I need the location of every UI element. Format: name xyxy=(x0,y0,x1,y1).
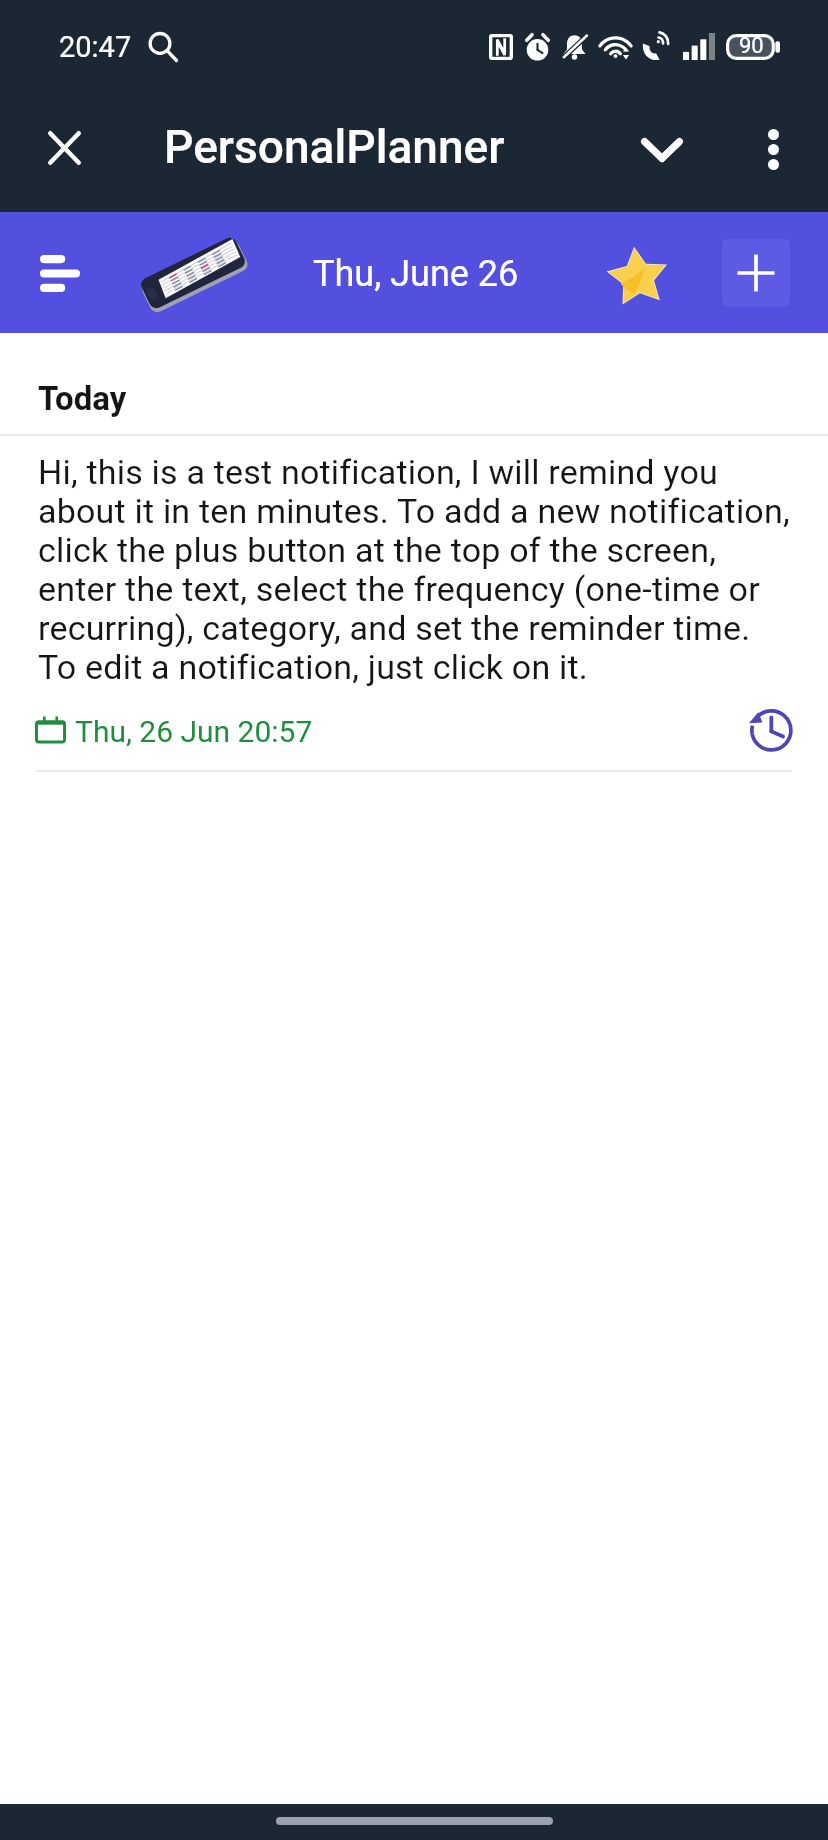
staticText: Hi, this is a test notification, I will … xyxy=(38,452,718,491)
staticText: Today xyxy=(38,379,127,418)
staticText: about it in ten minutes. To add a new no… xyxy=(38,491,790,530)
button[interactable]: Calendar preview xyxy=(140,236,246,310)
staticText: To edit a notification, just click on it… xyxy=(38,647,588,686)
staticText: enter the text, select the frequency (on… xyxy=(38,569,760,608)
button[interactable]: Close xyxy=(22,106,106,190)
button[interactable]: Home xyxy=(276,1817,553,1825)
button[interactable]: Menu xyxy=(20,233,100,313)
staticText: recurring), category, and set the remind… xyxy=(38,608,751,647)
button[interactable]: Add xyxy=(722,239,790,307)
button[interactable]: Expand xyxy=(620,108,704,192)
staticText: PersonalPlanner xyxy=(164,120,505,174)
button[interactable]: Hi, this is a test notification, I will … xyxy=(0,436,828,772)
staticText: 90 xyxy=(739,33,764,59)
button[interactable]: Search xyxy=(148,32,178,62)
button[interactable]: Repeat xyxy=(740,699,798,757)
button[interactable]: Favorite xyxy=(598,235,678,315)
staticText: click the plus button at the top of the … xyxy=(38,530,717,569)
staticText: Thu, June 26 xyxy=(313,253,519,295)
staticText: 20:47 xyxy=(59,30,132,64)
button[interactable]: More options xyxy=(731,107,815,191)
staticText: Thu, 26 Jun 20:57 xyxy=(75,714,313,749)
